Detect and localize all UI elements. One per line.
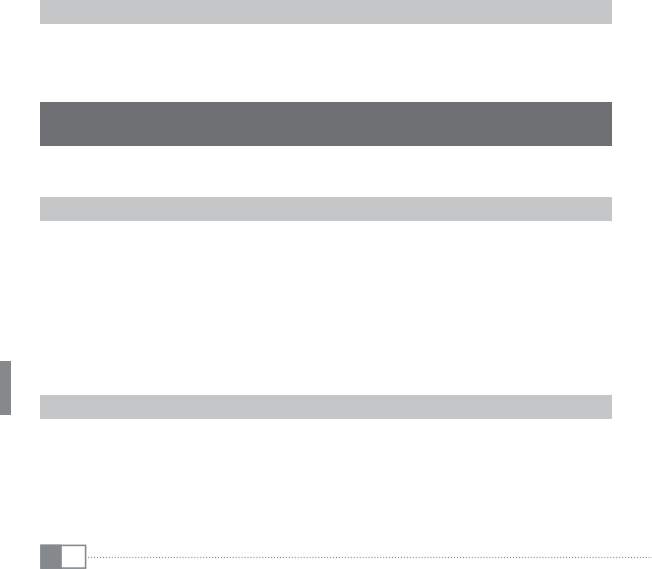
button[interactable]: Legend swatch <box>40 545 86 569</box>
